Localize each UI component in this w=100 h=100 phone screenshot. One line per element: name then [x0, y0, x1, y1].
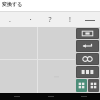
button[interactable]: Backspace — [76, 28, 99, 39]
button[interactable]: Recents — [79, 94, 88, 99]
button[interactable]: Emoji — [76, 79, 87, 92]
button[interactable]: ? — [40, 12, 60, 27]
staticText: ・ — [27, 15, 34, 24]
staticText: ? — [48, 15, 52, 25]
button[interactable]: . — [0, 12, 20, 27]
button[interactable]: Back — [12, 94, 21, 99]
button[interactable]: Undo — [76, 53, 99, 65]
staticText: ! — [69, 15, 71, 25]
button[interactable]: ・ — [20, 12, 40, 27]
staticText: . — [9, 15, 11, 25]
staticText: 変換する — [2, 1, 23, 7]
button[interactable]: Home — [46, 94, 55, 99]
button[interactable] — [80, 12, 100, 27]
button[interactable]: Enter — [76, 40, 99, 52]
button[interactable]: Numbers — [76, 66, 99, 78]
button[interactable]: Settings — [88, 79, 99, 92]
button[interactable]: ! — [60, 12, 80, 27]
